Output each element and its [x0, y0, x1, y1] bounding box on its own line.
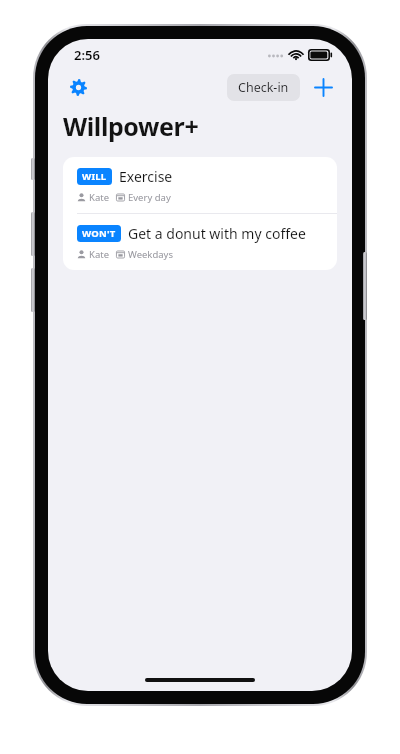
staticText: WILL: [82, 170, 107, 183]
staticText: Weekdays: [128, 248, 174, 261]
staticText: 2:56: [74, 46, 100, 64]
button[interactable]: Check-in: [227, 74, 300, 101]
staticText: Get a donut with my coffee: [128, 224, 306, 243]
staticText: Kate: [89, 248, 109, 261]
staticText: Exercise: [119, 167, 173, 186]
staticText: Kate: [89, 191, 109, 204]
staticText: Every day: [128, 191, 171, 204]
button[interactable]: WILL: [63, 157, 337, 213]
staticText: WON'T: [82, 227, 116, 240]
button[interactable]: Settings: [62, 71, 94, 103]
staticText: Willpower+: [63, 109, 199, 143]
button[interactable]: WON'T: [63, 214, 337, 270]
staticText: Check-in: [238, 79, 289, 96]
button[interactable]: Add: [308, 72, 338, 102]
